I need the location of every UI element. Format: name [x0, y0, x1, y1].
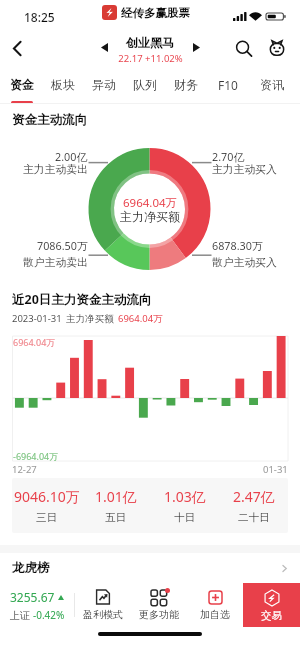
staticText: 龙虎榜	[12, 560, 50, 576]
button[interactable]: 下一只股票	[186, 37, 206, 57]
staticText: -6964.04万	[13, 450, 59, 462]
staticText: 近20日主力资金主动流向	[12, 291, 152, 308]
button[interactable]: 板块	[42, 78, 84, 103]
staticText: 22.17 +11.02%	[118, 52, 183, 65]
staticText: 6878.30万	[212, 238, 263, 253]
staticText: 五日	[105, 511, 126, 524]
button[interactable]: 1.01亿	[81, 478, 150, 533]
staticText: 18:25	[24, 9, 55, 25]
button[interactable]: 3255.67	[0, 583, 74, 627]
staticText: 6964.04万	[123, 195, 178, 211]
staticText: 资金	[10, 77, 34, 92]
staticText: 上证	[10, 609, 30, 622]
staticText: 9046.10万	[14, 487, 80, 506]
button[interactable]: 资讯	[251, 78, 293, 103]
staticText: 资金主动流向	[12, 112, 87, 128]
staticText: 板块	[51, 77, 75, 92]
staticText: 2.47亿	[233, 487, 275, 506]
staticText: 盈利模式	[83, 608, 123, 621]
button[interactable]: F10	[207, 78, 249, 103]
staticText: 3255.67	[10, 589, 55, 605]
staticText: 资讯	[260, 77, 284, 92]
staticText: 2023-01-31	[12, 312, 62, 325]
staticText: 交易	[261, 609, 282, 622]
button[interactable]: 异动	[83, 78, 125, 103]
button[interactable]: 返回	[0, 31, 34, 65]
button[interactable]: 智能助手	[263, 35, 291, 63]
staticText: 2.00亿	[55, 149, 88, 164]
staticText: 7086.50万	[37, 238, 88, 253]
staticText: 异动	[92, 77, 116, 92]
button[interactable]: 交易	[243, 583, 300, 627]
staticText: F10	[218, 77, 238, 93]
staticText: 主力净买额	[120, 209, 180, 224]
button[interactable]: 加自选	[187, 583, 243, 627]
staticText: 6964.04万	[13, 336, 56, 348]
staticText: 队列	[133, 77, 157, 92]
staticText: 01-31	[263, 463, 288, 476]
staticText: 6964.04万	[118, 312, 163, 325]
button[interactable]: 1.03亿	[150, 478, 219, 533]
staticText: 主力净买额	[66, 313, 114, 325]
button[interactable]: 上一只股票	[94, 37, 114, 57]
staticText: 十日	[174, 511, 195, 524]
staticText: 散户主动买入	[212, 256, 277, 270]
staticText: 12-27	[12, 463, 37, 476]
staticText: 加自选	[200, 608, 230, 621]
staticText: 三日	[36, 511, 57, 524]
button[interactable]: 资金	[1, 78, 43, 103]
staticText: 2.70亿	[212, 149, 245, 164]
staticText: -0.42%	[33, 608, 65, 622]
staticText: 散户主动卖出	[23, 256, 88, 270]
button[interactable]: 队列	[124, 78, 166, 103]
button[interactable]: 财务	[165, 78, 207, 103]
staticText: 二十日	[238, 511, 270, 524]
staticText: 主力主动买入	[212, 163, 277, 177]
staticText: 创业黑马	[126, 35, 174, 50]
button[interactable]: 9046.10万	[12, 478, 81, 533]
button[interactable]: 龙虎榜	[0, 553, 300, 583]
staticText: 更多功能	[139, 608, 179, 621]
button[interactable]: 更多功能	[131, 583, 187, 627]
staticText: 主力主动卖出	[23, 163, 88, 177]
button[interactable]: 2.47亿	[219, 478, 288, 533]
staticText: 经传多赢股票	[121, 6, 190, 20]
staticText: 1.01亿	[95, 487, 137, 506]
button[interactable]: 盈利模式	[75, 583, 131, 627]
button[interactable]: 创业黑马	[100, 35, 200, 65]
staticText: 财务	[174, 77, 198, 92]
staticText: 1.03亿	[164, 487, 206, 506]
button[interactable]: 搜索	[230, 35, 258, 63]
